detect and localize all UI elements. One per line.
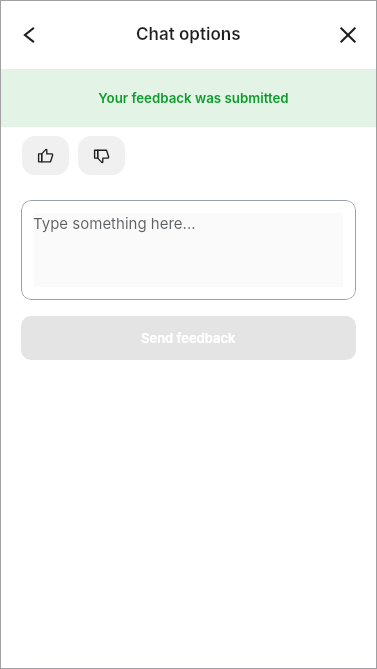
staticText: Type something here... — [33, 214, 196, 232]
button[interactable]: Close — [325, 12, 371, 58]
staticText: Send feedback — [141, 330, 236, 346]
button[interactable]: Thumb up — [22, 136, 69, 175]
button[interactable]: Type something here... — [21, 200, 356, 300]
button[interactable]: Back — [6, 12, 52, 58]
button[interactable]: Thumb down — [78, 136, 125, 175]
staticText: Your feedback was submitted — [98, 90, 289, 106]
staticText: Chat options — [136, 24, 241, 45]
button[interactable]: Send feedback — [21, 316, 356, 360]
